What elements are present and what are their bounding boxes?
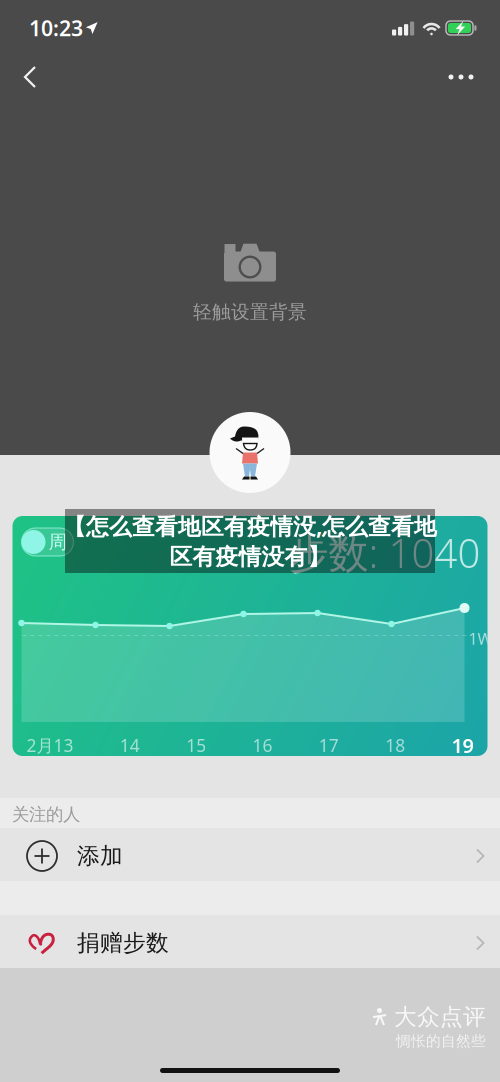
staticText: 18 (385, 734, 405, 757)
staticText: 【怎么查看地区有疫情没,怎么查看地 (63, 511, 437, 541)
button[interactable]: More (434, 55, 488, 99)
staticText: 17 (319, 734, 339, 757)
staticText: 区有疫情没有】 (169, 543, 330, 571)
staticText: 14 (120, 734, 140, 757)
staticText: 1W (468, 628, 492, 649)
button[interactable]: 周 (19, 526, 75, 558)
staticText: 2月13 (26, 734, 73, 757)
staticText: 10:23 (29, 14, 83, 42)
button[interactable]: 捐赠步数 (0, 915, 500, 968)
staticText: 大众点评 (394, 1003, 486, 1031)
staticText: 15 (186, 734, 206, 757)
staticText: 添加 (77, 842, 123, 870)
staticText: 19 (451, 732, 473, 759)
button[interactable]: 轻触设置背景 (160, 240, 340, 326)
staticText: 16 (252, 734, 272, 757)
staticText: 关注的人 (12, 804, 80, 825)
staticText: 步数: 1040 (288, 526, 480, 579)
staticText: 轻触设置背景 (193, 300, 307, 323)
button[interactable]: 添加 (0, 828, 500, 881)
staticText: 周 (48, 530, 67, 553)
button[interactable]: Back (6, 55, 54, 99)
staticText: 惆怅的自然些 (396, 1032, 486, 1050)
staticText: 捐赠步数 (77, 929, 169, 957)
